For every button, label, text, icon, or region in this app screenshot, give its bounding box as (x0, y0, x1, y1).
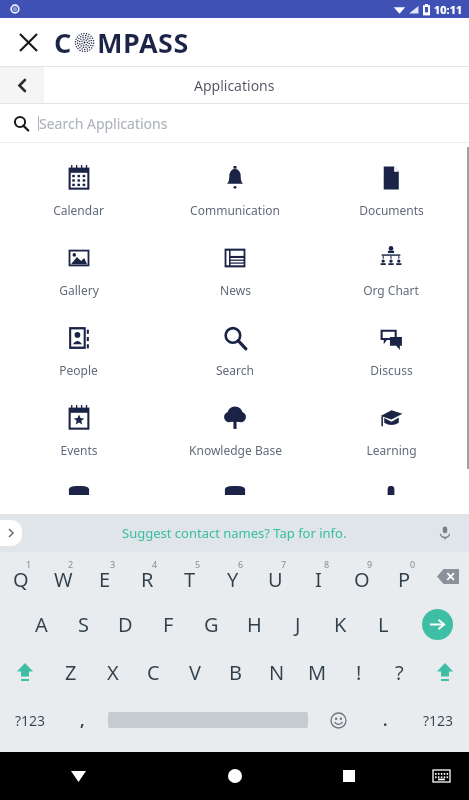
staticText: 4 (152, 558, 158, 570)
button[interactable]: Emoji (312, 696, 364, 744)
button[interactable]: Gallery (0, 235, 157, 315)
button[interactable]: Documents (313, 155, 469, 235)
staticText: , (80, 709, 85, 731)
staticText: . (383, 709, 388, 731)
staticText: ? (395, 659, 404, 686)
button[interactable]: H (233, 600, 276, 648)
button[interactable]: Expand suggestions (0, 520, 22, 546)
button[interactable]: K (319, 600, 362, 648)
button[interactable]: V (174, 648, 215, 696)
button[interactable]: ! (338, 648, 379, 696)
staticText: J (295, 611, 301, 638)
staticText: Applications (194, 76, 275, 95)
button[interactable]: 9 (340, 552, 383, 600)
button[interactable]: Search (157, 315, 313, 395)
staticText: O (354, 566, 370, 593)
button[interactable]: 4 (126, 552, 168, 600)
button[interactable]: Calendar (0, 155, 157, 235)
staticText: V (189, 659, 201, 686)
staticText: X (107, 659, 119, 686)
button[interactable]: 5 (168, 552, 211, 600)
button[interactable]: B (215, 648, 256, 696)
button[interactable]: Shift (420, 648, 469, 696)
button[interactable]: Shift (0, 648, 50, 696)
button[interactable]: Home (185, 752, 285, 800)
staticText: B (229, 659, 242, 686)
button[interactable]: Suggest contact names? Tap for info. (122, 524, 347, 542)
button[interactable]: 1 (0, 552, 42, 600)
button[interactable]: Events (0, 395, 157, 475)
button[interactable]: 8 (297, 552, 340, 600)
button[interactable]: Discuss (313, 315, 469, 395)
button[interactable]: F (147, 600, 190, 648)
staticText: Z (65, 659, 77, 686)
staticText: K (334, 611, 347, 638)
button[interactable]: Back (0, 752, 156, 800)
button[interactable]: S (62, 600, 104, 648)
staticText: T (184, 566, 196, 593)
staticText: E (99, 566, 111, 593)
staticText: S (78, 611, 89, 638)
button[interactable]: M (297, 648, 338, 696)
staticText: 7 (281, 558, 287, 570)
staticText: 8 (324, 558, 330, 570)
button[interactable]: 6 (211, 552, 254, 600)
staticText: I (315, 566, 322, 593)
staticText: Discuss (370, 362, 413, 378)
button[interactable]: , (61, 696, 104, 744)
staticText: 0 (410, 558, 416, 570)
button[interactable]: D (104, 600, 147, 648)
button[interactable]: Voice input (435, 523, 455, 543)
button[interactable]: J (276, 600, 319, 648)
staticText: P (398, 566, 411, 593)
staticText: 9 (367, 558, 373, 570)
staticText: News (220, 282, 251, 298)
button[interactable]: ?123 (407, 696, 469, 744)
button[interactable]: Org Chart (313, 235, 469, 315)
button[interactable]: ?123 (0, 696, 61, 744)
button[interactable]: Recents (309, 752, 389, 800)
staticText: U (268, 566, 283, 593)
button[interactable]: A (20, 600, 62, 648)
button[interactable]: C (133, 648, 174, 696)
button[interactable]: X (92, 648, 133, 696)
button[interactable]: 0 (383, 552, 426, 600)
staticText: N (269, 659, 285, 686)
staticText: Q (13, 566, 29, 593)
button[interactable]: Z (50, 648, 92, 696)
button[interactable]: 2 (42, 552, 84, 600)
staticText: C (54, 24, 72, 61)
button[interactable]: News (157, 235, 313, 315)
button[interactable]: 3 (84, 552, 126, 600)
staticText: Gallery (59, 282, 99, 298)
button[interactable]: Knowledge Base (157, 395, 313, 475)
staticText: R (141, 566, 154, 593)
staticText: G (204, 611, 219, 638)
button[interactable]: Space (104, 696, 312, 744)
button[interactable]: Learning (313, 395, 469, 475)
button[interactable]: Search Applications (0, 104, 469, 142)
button[interactable]: L (362, 600, 405, 648)
staticText: Search Applications (39, 114, 168, 133)
button[interactable]: Back (0, 67, 44, 103)
button[interactable]: Backspace (426, 552, 469, 600)
staticText: C (147, 659, 160, 686)
button[interactable]: 7 (254, 552, 297, 600)
button[interactable]: Close (12, 26, 44, 58)
staticText: Learning (366, 442, 417, 458)
button[interactable]: People (0, 315, 157, 395)
button[interactable]: Switch keyboard (413, 752, 469, 800)
staticText: W (54, 566, 73, 593)
button[interactable]: Enter (405, 600, 469, 648)
staticText: 10:11 (434, 2, 463, 17)
button[interactable]: . (364, 696, 407, 744)
staticText: 2 (68, 558, 74, 570)
staticText: Org Chart (363, 282, 419, 298)
staticText: F (163, 611, 174, 638)
button[interactable]: ? (379, 648, 420, 696)
staticText: Calendar (53, 202, 104, 218)
button[interactable]: Communication (157, 155, 313, 235)
staticText: 3 (110, 558, 116, 570)
button[interactable]: N (256, 648, 297, 696)
button[interactable]: G (190, 600, 233, 648)
